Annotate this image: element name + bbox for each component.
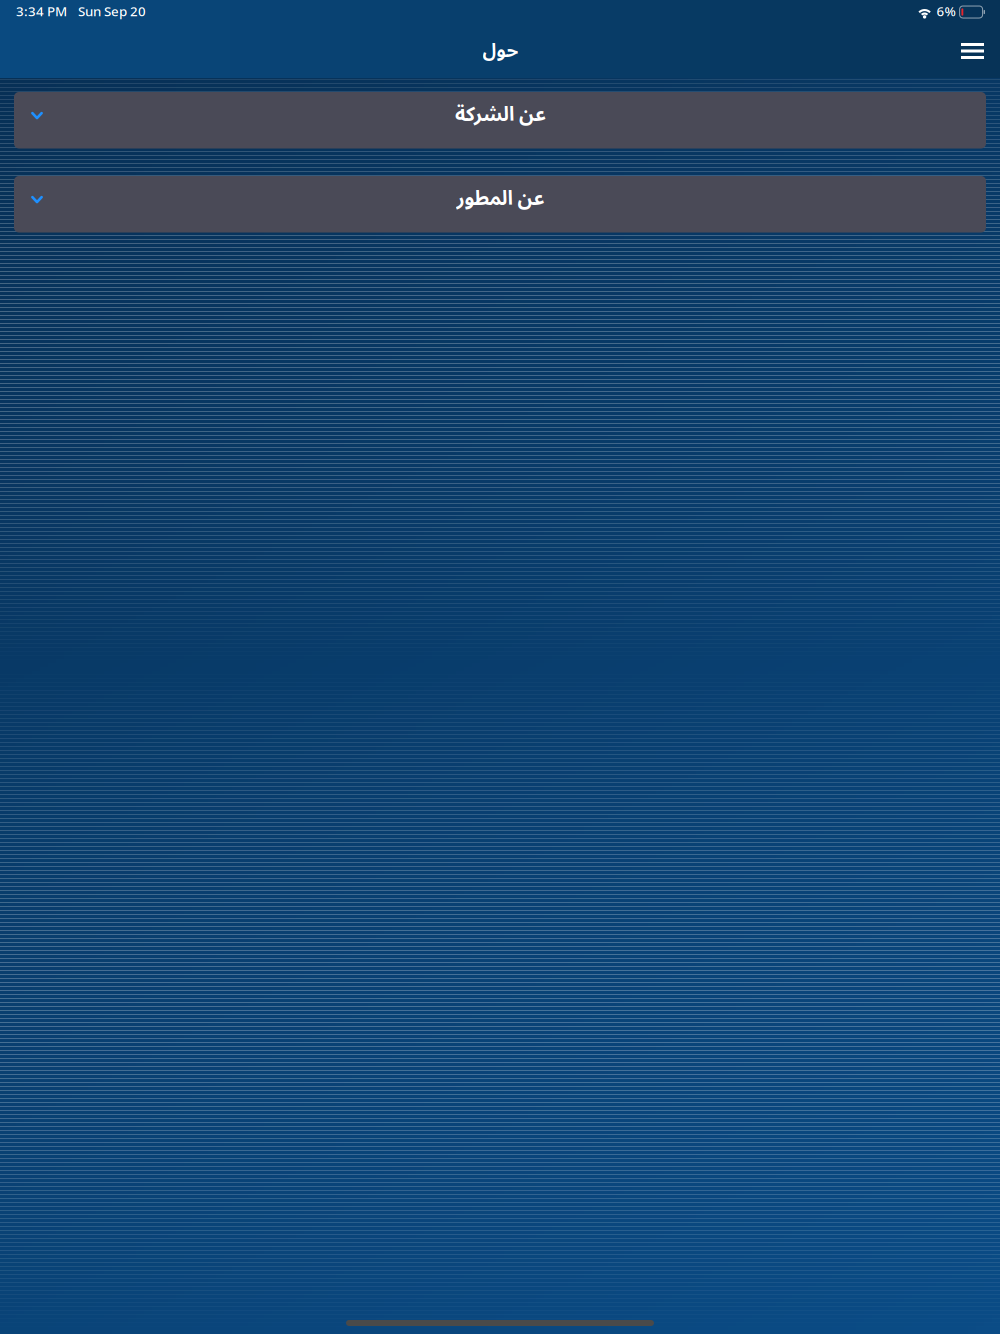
- staticText: 3:34 PM: [16, 0, 67, 26]
- staticText: عن المطور: [456, 178, 544, 220]
- staticText: Sun Sep 20: [78, 0, 146, 26]
- button[interactable]: Menu: [950, 30, 995, 71]
- button[interactable]: عن الشركة: [14, 92, 986, 148]
- staticText: 6%: [937, 0, 956, 26]
- staticText: حول: [482, 31, 518, 71]
- staticText: عن الشركة: [454, 94, 545, 136]
- button[interactable]: عن المطور: [14, 176, 986, 232]
